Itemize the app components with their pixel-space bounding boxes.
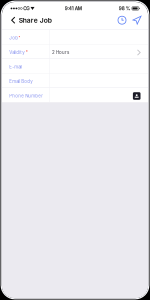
staticText: E-mail bbox=[9, 64, 22, 70]
button[interactable]: Choose from contacts bbox=[132, 92, 141, 100]
button[interactable]: Job bbox=[2, 30, 148, 44]
button[interactable]: History bbox=[114, 12, 129, 28]
button[interactable]: E-mail bbox=[2, 59, 148, 73]
staticText: Phone Number bbox=[9, 93, 43, 99]
staticText: 9:41 AM bbox=[65, 6, 82, 11]
button[interactable]: Validity bbox=[2, 44, 148, 59]
staticText: * bbox=[26, 50, 28, 55]
staticText: Validity bbox=[9, 50, 24, 55]
button[interactable]: Send bbox=[129, 12, 144, 28]
staticText: * bbox=[18, 35, 20, 41]
button[interactable]: Share Job bbox=[2, 12, 58, 28]
staticText: Job bbox=[9, 35, 18, 41]
staticText: CG bbox=[22, 6, 29, 11]
button[interactable]: Phone Number bbox=[2, 88, 148, 102]
button[interactable]: Email Body bbox=[2, 73, 148, 88]
staticText: Share Job bbox=[19, 16, 52, 24]
staticText: 2 Hours bbox=[52, 50, 69, 55]
staticText: 98 % bbox=[119, 6, 131, 11]
staticText: Email Body bbox=[9, 79, 32, 84]
